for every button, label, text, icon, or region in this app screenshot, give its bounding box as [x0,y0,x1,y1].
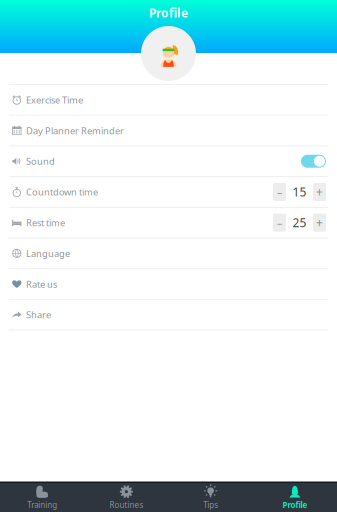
button[interactable]: Increase [313,214,326,232]
button[interactable]: Decrease [273,214,286,232]
staticText: Exercise Time [26,94,83,106]
button[interactable]: Increase [313,183,326,201]
staticText: + [316,215,323,231]
button[interactable]: Sound [0,146,337,177]
button[interactable]: Routines [84,483,168,512]
button[interactable]: Countdown time [0,177,337,208]
staticText: Rate us [26,278,57,290]
staticText: Day Planner Reminder [26,124,124,137]
staticText: Training [27,500,57,510]
staticText: Profile [282,500,307,510]
staticText: – [277,216,282,230]
button[interactable]: Rate us [0,269,337,300]
button[interactable]: Day Planner Reminder [0,116,337,146]
staticText: Language [26,247,70,260]
staticText: – [277,185,282,199]
staticText: + [316,184,323,200]
staticText: Sound [26,155,55,167]
button[interactable]: Rest time [0,208,337,238]
staticText: Tips [203,500,218,510]
staticText: Countdown time [26,186,98,198]
button[interactable]: Share [0,300,337,331]
button[interactable]: Decrease [273,183,286,201]
staticText: Rest time [26,216,65,229]
staticText: Routines [109,500,143,510]
button[interactable]: Profile [253,483,337,512]
staticText: 15 [292,184,306,200]
staticText: 25 [292,215,306,231]
staticText: Share [26,309,51,321]
button[interactable]: Exercise Time [0,85,337,116]
staticText: Profile [149,5,188,21]
button[interactable]: Tips [168,483,253,512]
button[interactable]: Language [0,238,337,269]
button[interactable]: Training [0,483,84,512]
